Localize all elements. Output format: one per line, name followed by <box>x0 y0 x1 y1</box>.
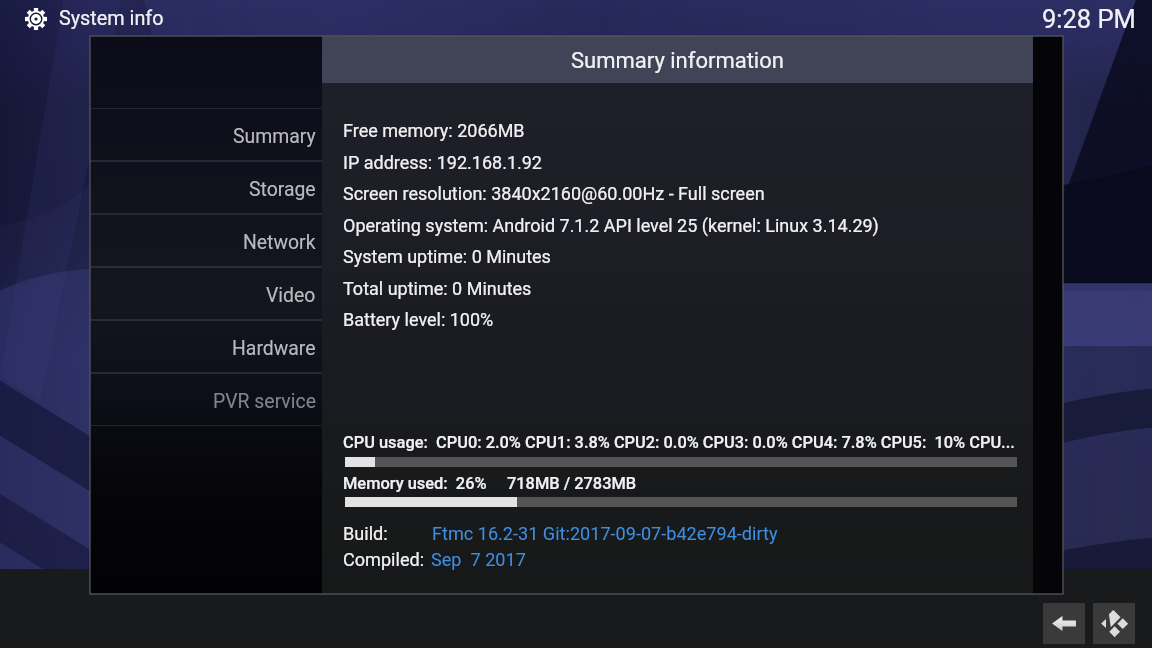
staticText: Network <box>243 231 316 254</box>
staticText: Summary <box>233 125 316 148</box>
staticText: Build: <box>343 523 388 544</box>
button[interactable]: Video <box>90 267 322 320</box>
button[interactable]: Summary <box>90 108 322 161</box>
button[interactable]: Storage <box>90 161 322 214</box>
staticText: Ftmc 16.2-31 Git:2017-09-07-b42e794-dirt… <box>432 523 778 544</box>
button[interactable]: Home <box>1093 603 1135 644</box>
staticText: Video <box>266 284 316 307</box>
staticText: Screen resolution: 3840x2160@60.00Hz - F… <box>343 183 765 204</box>
staticText: CPU usage: CPU0: 2.0% CPU1: 3.8% CPU2: 0… <box>343 433 1015 452</box>
staticText: 9:28 PM <box>1042 4 1136 34</box>
staticText: Sep 7 2017 <box>431 549 526 570</box>
staticText: Storage <box>249 178 316 201</box>
staticText: IP address: 192.168.1.92 <box>343 152 542 173</box>
button[interactable]: Back <box>1043 603 1085 644</box>
staticText: Compiled: <box>343 549 425 570</box>
staticText: PVR service <box>213 390 316 413</box>
staticText: Operating system: Android 7.1.2 API leve… <box>343 215 879 236</box>
button[interactable]: Network <box>90 214 322 267</box>
button[interactable]: Hardware <box>90 320 322 373</box>
staticText: System info <box>59 7 164 30</box>
staticText: System uptime: 0 Minutes <box>343 246 551 267</box>
staticText: Memory used: 26% 718MB / 2783MB <box>343 474 637 493</box>
staticText: Hardware <box>232 337 316 360</box>
staticText: Summary information <box>571 48 784 74</box>
button[interactable]: PVR service <box>90 373 322 426</box>
other: Settings <box>25 8 47 30</box>
staticText: Free memory: 2066MB <box>343 120 525 141</box>
staticText: Total uptime: 0 Minutes <box>343 278 532 299</box>
staticText: Battery level: 100% <box>343 309 494 330</box>
